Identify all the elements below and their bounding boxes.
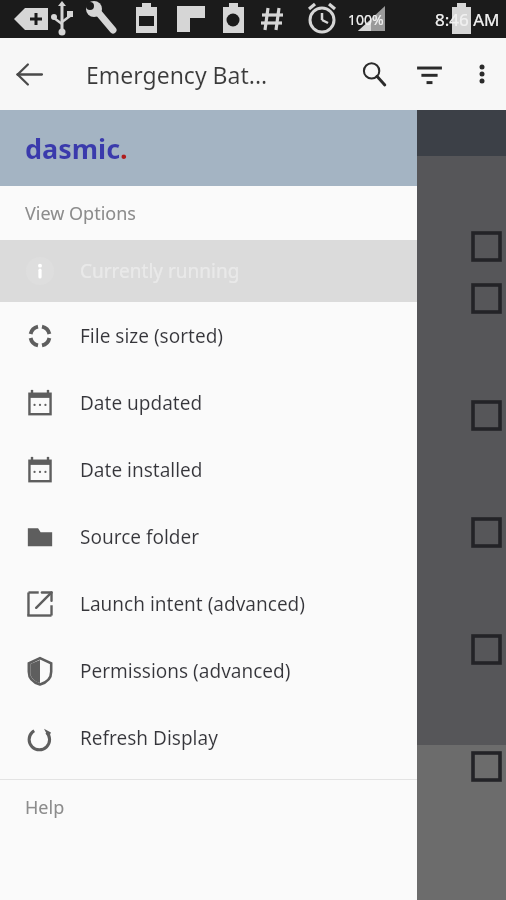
button[interactable]: Date updated	[0, 369, 417, 436]
button[interactable]: Back	[0, 45, 58, 103]
button[interactable]: Filter	[400, 45, 458, 103]
staticText: Date updated	[80, 390, 203, 416]
staticText: Help	[25, 795, 65, 820]
staticText: Launch intent (advanced)	[80, 591, 305, 617]
button[interactable]: More options	[458, 50, 506, 98]
button[interactable]: Permissions (advanced)	[0, 637, 417, 704]
button[interactable]: Date installed	[0, 436, 417, 503]
staticText: View Options	[25, 201, 136, 226]
staticText: dasmic.	[25, 130, 128, 167]
button[interactable]: File size (sorted)	[0, 302, 417, 369]
staticText: Permissions (advanced)	[80, 658, 291, 684]
staticText: 100%	[348, 10, 384, 29]
staticText: Date installed	[80, 457, 203, 483]
staticText: Emergency Bat...	[86, 59, 348, 90]
button[interactable]: Source folder	[0, 503, 417, 570]
staticText: 8:46 AM	[435, 8, 500, 31]
staticText: Source folder	[80, 524, 200, 550]
staticText: File size (sorted)	[80, 323, 224, 349]
staticText: Currently running	[80, 258, 240, 284]
button[interactable]: Refresh Display	[0, 704, 417, 771]
staticText: Refresh Display	[80, 725, 218, 751]
button[interactable]: Launch intent (advanced)	[0, 570, 417, 637]
button[interactable]: Search	[348, 48, 400, 100]
